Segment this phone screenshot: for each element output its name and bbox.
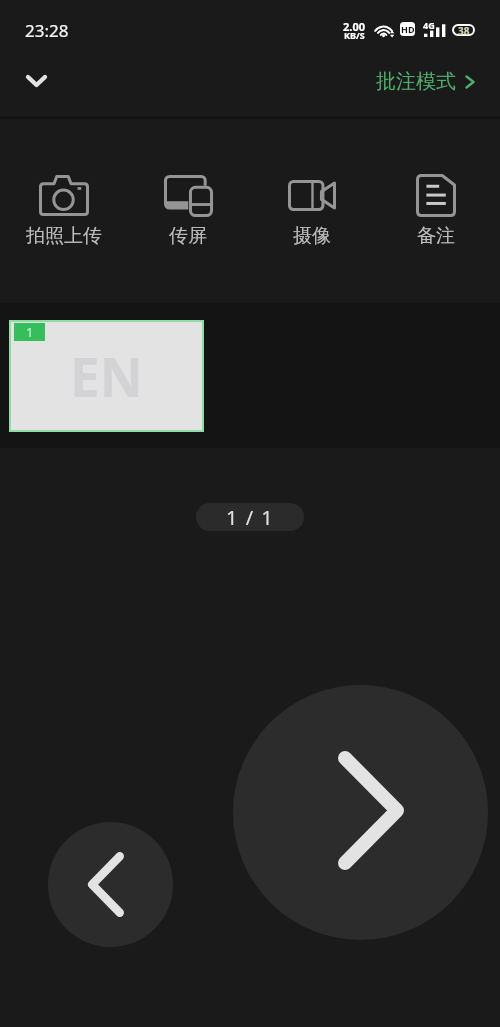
staticText: 4G bbox=[423, 19, 435, 31]
staticText: 传屏 bbox=[169, 224, 207, 248]
staticText: 23:28 bbox=[25, 19, 69, 42]
button[interactable]: 备注 bbox=[376, 119, 496, 303]
staticText: EN bbox=[70, 340, 143, 412]
staticText: 摄像 bbox=[293, 224, 331, 248]
staticText: 38 bbox=[458, 24, 470, 36]
button[interactable]: Slide 1 thumbnail bbox=[9, 320, 204, 432]
staticText: 2.00 bbox=[343, 19, 365, 34]
staticText: KB/S bbox=[344, 29, 365, 41]
button[interactable]: Next slide bbox=[233, 685, 488, 940]
staticText: 1 / 1 bbox=[226, 504, 275, 531]
staticText: 1 bbox=[26, 323, 34, 341]
staticText: 备注 bbox=[417, 224, 455, 248]
button[interactable]: 批注模式 bbox=[376, 69, 475, 94]
staticText: HD bbox=[401, 23, 415, 35]
button[interactable]: 摄像 bbox=[252, 119, 372, 303]
staticText: 批注模式 bbox=[376, 69, 456, 94]
button[interactable]: 传屏 bbox=[128, 119, 248, 303]
staticText: 拍照上传 bbox=[26, 224, 102, 248]
button[interactable]: Previous slide bbox=[48, 822, 173, 947]
button[interactable]: 拍照上传 bbox=[4, 119, 124, 303]
button[interactable]: 1 / 1 bbox=[196, 503, 304, 531]
button[interactable]: Collapse bbox=[8, 53, 64, 109]
